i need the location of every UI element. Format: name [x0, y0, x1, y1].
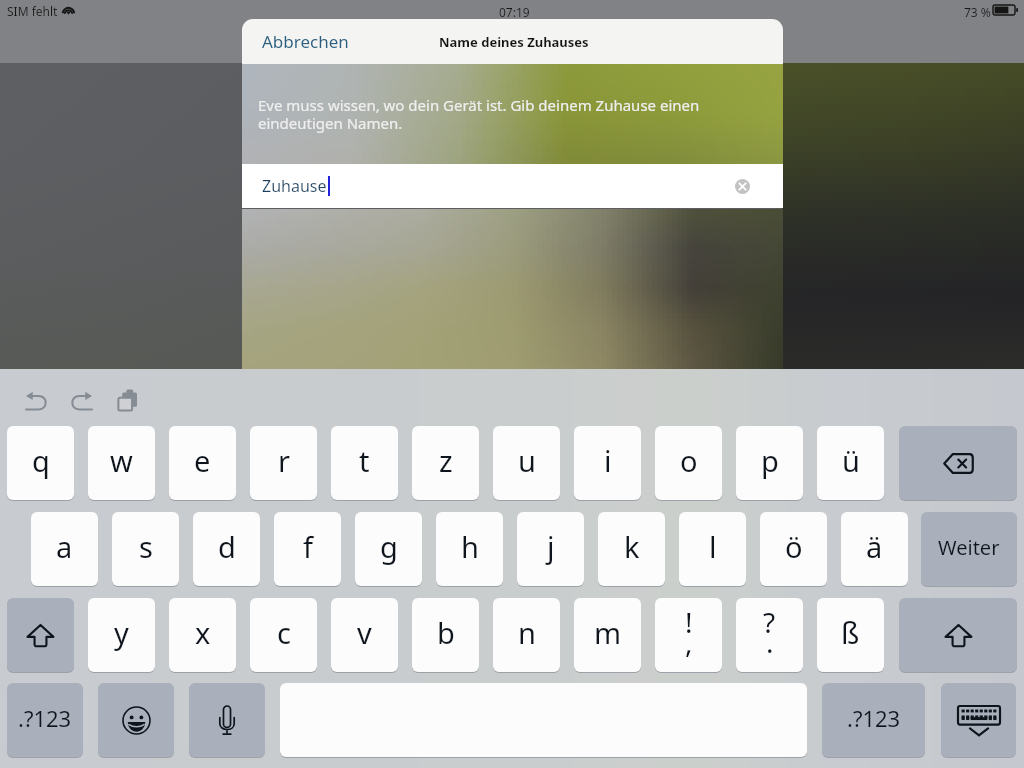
- staticText: w: [110, 441, 133, 480]
- staticText: p: [761, 441, 779, 480]
- button[interactable]: ä: [841, 512, 908, 586]
- button[interactable]: ß: [817, 598, 884, 672]
- staticText: ß: [841, 613, 860, 652]
- button[interactable]: ?: [736, 598, 803, 672]
- staticText: ä: [866, 527, 883, 566]
- button[interactable]: c: [250, 598, 317, 672]
- staticText: h: [461, 527, 479, 566]
- staticText: Eve muss wissen, wo dein Gerät ist. Gib …: [258, 95, 700, 133]
- staticText: j: [547, 527, 555, 566]
- button[interactable]: .?123: [822, 683, 925, 757]
- staticText: z: [439, 441, 453, 480]
- button[interactable]: z: [412, 426, 479, 500]
- button[interactable]: v: [331, 598, 398, 672]
- staticText: f: [303, 527, 313, 566]
- staticText: ü: [842, 441, 860, 480]
- staticText: x: [195, 613, 211, 652]
- button[interactable]: Backspace: [899, 426, 1017, 500]
- staticText: ö: [785, 527, 803, 566]
- button[interactable]: f: [274, 512, 341, 586]
- button[interactable]: p: [736, 426, 803, 500]
- button[interactable]: r: [250, 426, 317, 500]
- staticText: s: [139, 527, 153, 566]
- staticText: Zuhause: [262, 175, 327, 197]
- staticText: m: [594, 613, 622, 652]
- button[interactable]: Paste: [109, 382, 145, 418]
- button[interactable]: ö: [760, 512, 827, 586]
- staticText: .?123: [18, 703, 72, 733]
- staticText: Weiter: [938, 534, 1000, 561]
- staticText: 73 %: [964, 4, 991, 20]
- staticText: 07:19: [499, 4, 530, 20]
- button[interactable]: Dictation: [189, 683, 265, 757]
- button[interactable]: w: [88, 426, 155, 500]
- button[interactable]: h: [436, 512, 503, 586]
- button[interactable]: u: [493, 426, 560, 500]
- button[interactable]: b: [412, 598, 479, 672]
- button[interactable]: j: [517, 512, 584, 586]
- staticText: y: [114, 613, 129, 652]
- staticText: a: [56, 527, 73, 566]
- button[interactable]: a: [31, 512, 98, 586]
- staticText: g: [380, 527, 398, 566]
- button[interactable]: n: [493, 598, 560, 672]
- button[interactable]: .?123: [7, 683, 83, 757]
- button[interactable]: d: [193, 512, 260, 586]
- staticText: !: [685, 603, 693, 641]
- staticText: r: [278, 441, 290, 480]
- staticText: ?: [763, 603, 776, 641]
- staticText: ,: [685, 623, 693, 661]
- staticText: o: [680, 441, 698, 480]
- button[interactable]: m: [574, 598, 641, 672]
- button[interactable]: !: [655, 598, 722, 672]
- staticText: k: [624, 527, 640, 566]
- button[interactable]: o: [655, 426, 722, 500]
- button[interactable]: e: [169, 426, 236, 500]
- staticText: u: [518, 441, 536, 480]
- button[interactable]: Emoji: [98, 683, 174, 757]
- button[interactable]: Undo: [18, 382, 54, 418]
- button[interactable]: q: [7, 426, 74, 500]
- button[interactable]: y: [88, 598, 155, 672]
- staticText: Name deines Zuhauses: [439, 33, 589, 51]
- button[interactable]: l: [679, 512, 746, 586]
- button[interactable]: g: [355, 512, 422, 586]
- staticText: SIM fehlt: [7, 3, 58, 19]
- button[interactable]: Hide keyboard: [941, 683, 1016, 757]
- button[interactable]: ü: [817, 426, 884, 500]
- staticText: i: [604, 441, 612, 480]
- button[interactable]: Weiter: [921, 512, 1017, 586]
- button[interactable]: Shift: [7, 598, 74, 672]
- staticText: d: [218, 527, 236, 566]
- staticText: q: [32, 441, 50, 480]
- staticText: b: [437, 613, 455, 652]
- staticText: .?123: [847, 703, 901, 733]
- staticText: n: [518, 613, 536, 652]
- staticText: Abbrechen: [262, 30, 349, 53]
- button[interactable]: Clear text: [723, 167, 761, 205]
- staticText: e: [194, 441, 211, 480]
- staticText: l: [709, 527, 717, 566]
- button[interactable]: Redo: [63, 382, 99, 418]
- button[interactable]: s: [112, 512, 179, 586]
- button[interactable]: k: [598, 512, 665, 586]
- staticText: c: [277, 613, 291, 652]
- staticText: v: [357, 613, 372, 652]
- button[interactable]: i: [574, 426, 641, 500]
- staticText: t: [359, 441, 370, 480]
- button[interactable]: Abbrechen: [242, 19, 404, 64]
- button[interactable]: t: [331, 426, 398, 500]
- button[interactable]: x: [169, 598, 236, 672]
- button[interactable]: Shift: [899, 598, 1017, 672]
- staticText: .: [766, 623, 774, 661]
